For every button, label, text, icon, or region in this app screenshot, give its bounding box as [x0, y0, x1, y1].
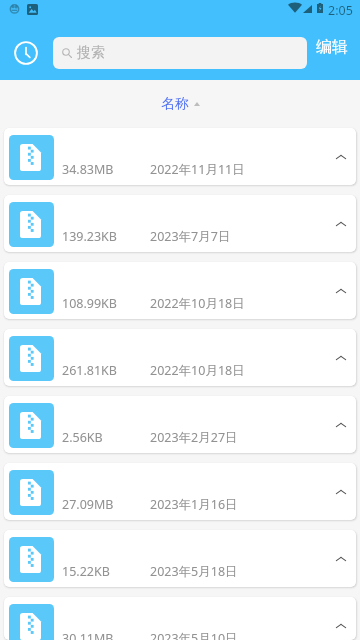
button[interactable]: 27.09MB: [4, 463, 356, 520]
staticText: 108.99KB: [62, 295, 117, 312]
staticText: 2023年2月27日: [150, 429, 238, 446]
staticText: 34.83MB: [62, 161, 114, 178]
button[interactable]: Collapse: [326, 410, 355, 439]
staticText: 2022年10月18日: [150, 295, 245, 312]
button[interactable]: Collapse: [326, 343, 355, 372]
staticText: 2.56KB: [62, 429, 103, 446]
button[interactable]: 34.83MB: [4, 128, 356, 185]
staticText: 2023年5月18日: [150, 563, 238, 580]
button[interactable]: Collapse: [326, 142, 355, 171]
button[interactable]: 261.81KB: [4, 329, 356, 386]
button[interactable]: 108.99KB: [4, 262, 356, 319]
button[interactable]: Collapse: [326, 544, 355, 573]
button[interactable]: 2.56KB: [4, 396, 356, 453]
staticText: 编辑: [316, 37, 348, 57]
staticText: 搜索: [77, 44, 105, 62]
button[interactable]: Recent: [14, 41, 38, 65]
button[interactable]: 15.22KB: [4, 530, 356, 587]
button[interactable]: Collapse: [326, 209, 355, 238]
staticText: 2022年11月11日: [150, 161, 245, 178]
button[interactable]: 30.11MB: [4, 597, 356, 640]
staticText: 27.09MB: [62, 496, 114, 513]
button[interactable]: 搜索: [53, 37, 307, 69]
button[interactable]: 139.23KB: [4, 195, 356, 252]
staticText: 139.23KB: [62, 228, 117, 245]
button[interactable]: Collapse: [326, 611, 355, 640]
staticText: 2022年10月18日: [150, 362, 245, 379]
staticText: 2023年5月10日: [150, 630, 238, 640]
button[interactable]: Collapse: [326, 276, 355, 305]
staticText: 名称: [161, 95, 189, 113]
button[interactable]: Collapse: [326, 477, 355, 506]
button[interactable]: 名称: [161, 95, 200, 113]
staticText: 2023年7月7日: [150, 228, 231, 245]
staticText: 2023年1月16日: [150, 496, 238, 513]
staticText: 15.22KB: [62, 563, 110, 580]
staticText: 261.81KB: [62, 362, 117, 379]
staticText: 2:05: [328, 2, 353, 19]
staticText: 30.11MB: [62, 630, 114, 640]
button[interactable]: 编辑: [311, 30, 353, 64]
